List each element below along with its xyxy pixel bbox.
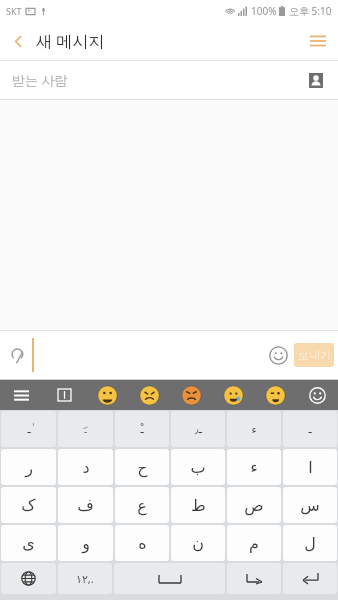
button[interactable]: ء (227, 449, 281, 485)
staticText: ر (25, 458, 33, 477)
button[interactable]: Emoji 4 (254, 380, 296, 410)
button[interactable]: Enter (283, 563, 337, 594)
button[interactable]: Emoji picker (296, 380, 338, 410)
button[interactable]: Emoji 0 (86, 380, 128, 410)
button[interactable]: Emoji 1 (128, 380, 170, 410)
staticText: ی (22, 534, 35, 553)
button[interactable]: م (227, 525, 281, 561)
button[interactable]: ط (171, 487, 225, 523)
staticText: ب (190, 458, 206, 477)
button[interactable]: Space (114, 563, 225, 594)
staticText: د (82, 458, 90, 477)
button[interactable]: ف (58, 487, 113, 523)
staticText: ﹿ (140, 423, 144, 436)
button[interactable]: ر (1, 449, 56, 485)
staticText: ء (250, 458, 258, 477)
button[interactable]: Sticker (43, 380, 86, 410)
staticText: 100% (251, 4, 277, 18)
button[interactable]: ـ٫ (171, 411, 225, 447)
button[interactable]: ص (227, 487, 281, 523)
button[interactable]: ه (115, 525, 169, 561)
button[interactable]: ـٰ (1, 411, 56, 447)
staticText: ه (138, 534, 147, 553)
staticText: م (249, 534, 259, 553)
button[interactable]: ا (283, 449, 337, 485)
button[interactable]: Attach (2, 339, 34, 371)
staticText: ص (244, 496, 264, 515)
button[interactable]: Emoji 2 (170, 380, 212, 410)
button[interactable]: ن (171, 525, 225, 561)
button[interactable]: Emoji 3 (212, 380, 254, 410)
staticText: س (300, 496, 320, 515)
button[interactable]: ﹿ (115, 411, 169, 447)
button[interactable]: Language (1, 563, 56, 594)
button[interactable]: Add contact (302, 66, 330, 94)
staticText: ن (192, 534, 204, 553)
button[interactable]: ـۜ (58, 411, 113, 447)
staticText: 오후 5:10 (289, 4, 332, 18)
button[interactable]: Keyboard menu (0, 380, 43, 410)
button[interactable]: ی (1, 525, 56, 561)
staticText: ـ٫ (195, 423, 202, 436)
staticText: 보내기 (298, 348, 331, 362)
staticText: ـۜ (84, 424, 87, 435)
button[interactable]: د (58, 449, 113, 485)
button[interactable]: Tab (227, 563, 281, 594)
button[interactable]: ک (1, 487, 56, 523)
button[interactable]: More options (298, 22, 338, 60)
button[interactable]: Emoji (264, 341, 292, 369)
button[interactable]: س (283, 487, 337, 523)
staticText: ﺀ (251, 423, 257, 436)
button[interactable]: Numbers (58, 563, 112, 594)
staticText: ـٰ (27, 423, 31, 436)
button[interactable]: و (58, 525, 113, 561)
staticText: و (82, 534, 90, 553)
button[interactable]: ح (115, 449, 169, 485)
staticText: 받는 사람 (12, 71, 68, 89)
button[interactable]: ب (171, 449, 225, 485)
staticText: ک (21, 496, 36, 515)
staticText: ١٢,. (76, 571, 94, 586)
staticText: ـ (308, 423, 312, 436)
staticText: ل (304, 534, 316, 553)
button[interactable]: 받는 사람 (0, 61, 338, 99)
staticText: 새 메시지 (36, 30, 105, 52)
button[interactable]: ـ (283, 411, 337, 447)
staticText: ح (137, 458, 148, 477)
staticText: ع (137, 496, 147, 515)
button[interactable]: ل (283, 525, 337, 561)
button[interactable]: ع (115, 487, 169, 523)
button[interactable]: 보내기 (294, 343, 334, 367)
button[interactable]: ﺀ (227, 411, 281, 447)
staticText: ا (308, 458, 313, 477)
staticText: ط (191, 496, 206, 515)
staticText: SKT (6, 5, 22, 17)
button[interactable]: Back (0, 23, 36, 59)
staticText: ف (77, 496, 94, 515)
